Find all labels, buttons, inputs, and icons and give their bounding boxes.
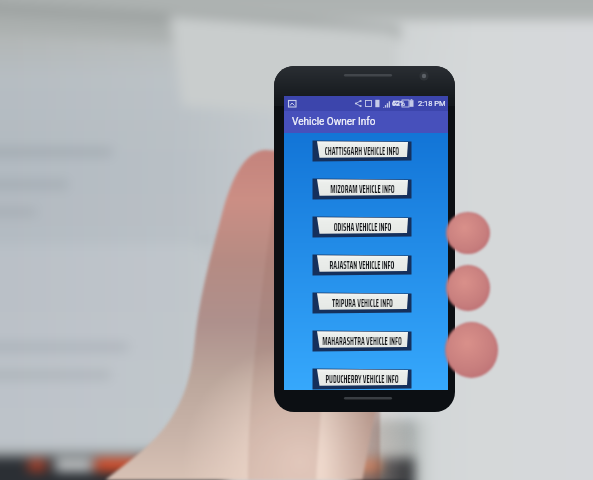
staticText: ODISHA VEHICLE INFO: [333, 218, 392, 235]
staticText: RAJASTAN VEHICLE INFO: [329, 256, 395, 273]
button[interactable]: RAJASTAN VEHICLE INFO: [312, 254, 412, 278]
staticText: 62%: [392, 100, 405, 108]
button[interactable]: CHATTISGARH VEHICLE INFO: [312, 140, 412, 164]
button[interactable]: TRIPURA VEHICLE INFO: [312, 292, 412, 316]
staticText: 2:18 PM: [418, 99, 446, 108]
staticText: CHATTISGARH VEHICLE INFO: [324, 142, 400, 159]
staticText: MAHARASHTRA VEHICLE INFO: [322, 332, 402, 349]
staticText: TRIPURA VEHICLE INFO: [332, 294, 393, 311]
button[interactable]: MIZORAM VEHICLE INFO: [312, 178, 412, 202]
staticText: PUDUCHERRY VEHICLE INFO: [325, 370, 399, 387]
button[interactable]: PUDUCHERRY VEHICLE INFO: [312, 368, 412, 392]
staticText: Vehicle Owner Info: [292, 116, 376, 128]
staticText: MIZORAM VEHICLE INFO: [330, 180, 395, 197]
button[interactable]: MAHARASHTRA VEHICLE INFO: [312, 330, 412, 354]
button[interactable]: ODISHA VEHICLE INFO: [312, 216, 412, 240]
button[interactable]: Vehicle Owner Info: [284, 111, 448, 133]
